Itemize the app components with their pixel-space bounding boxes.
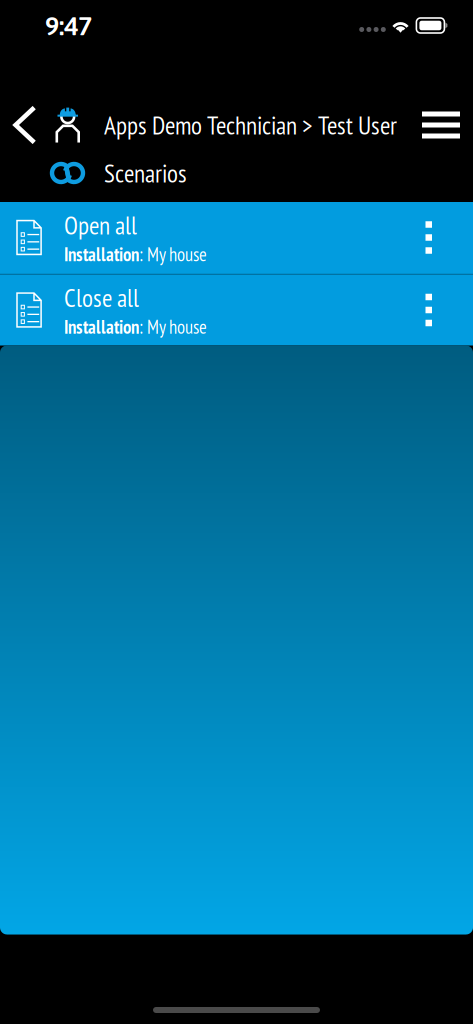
button[interactable]: Apps Demo Technician > Test User: [55, 89, 397, 161]
staticText: 9:47: [45, 10, 92, 41]
button[interactable]: Scenarios: [0, 147, 473, 199]
staticText: Close all: [64, 281, 139, 314]
staticText: Installation: My house: [64, 315, 207, 339]
staticText: Scenarios: [104, 157, 187, 189]
staticText: Apps Demo Technician > Test User: [104, 109, 397, 141]
button[interactable]: Menu: [414, 89, 473, 161]
button[interactable]: Open all: [0, 202, 473, 273]
staticText: Installation: My house: [64, 243, 207, 266]
button[interactable]: Close all: [0, 274, 473, 345]
staticText: Open all: [64, 209, 137, 242]
button[interactable]: Back: [0, 89, 55, 161]
